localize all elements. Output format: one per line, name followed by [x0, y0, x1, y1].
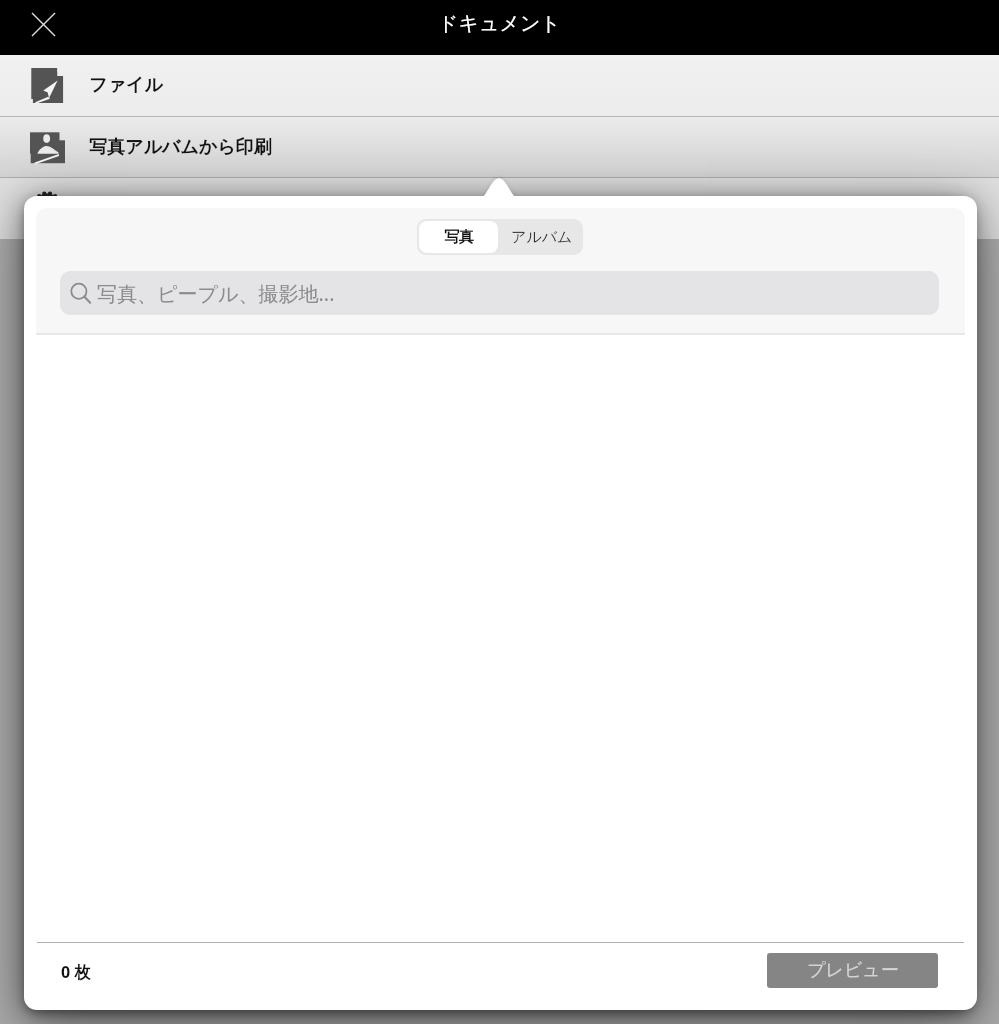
staticText: プレビュー [807, 959, 899, 982]
button[interactable]: 写真 [417, 219, 500, 255]
staticText: アルバム [511, 228, 573, 247]
button[interactable]: 写真アルバムから印刷 [0, 117, 999, 177]
staticText: 0 枚 [61, 961, 91, 983]
button[interactable] [0, 178, 999, 239]
staticText: 写真、ピープル、撮影地... [97, 280, 335, 307]
button[interactable]: Close [20, 1, 66, 47]
button[interactable]: 写真、ピープル、撮影地... [60, 271, 939, 315]
staticText: ドキュメント [438, 11, 561, 36]
button[interactable]: アルバム [500, 219, 583, 255]
staticText: 写真 [444, 228, 474, 247]
button[interactable]: ファイル [0, 55, 999, 116]
staticText: 写真アルバムから印刷 [89, 136, 272, 159]
button[interactable]: プレビュー [767, 953, 938, 988]
staticText: ファイル [89, 74, 163, 97]
